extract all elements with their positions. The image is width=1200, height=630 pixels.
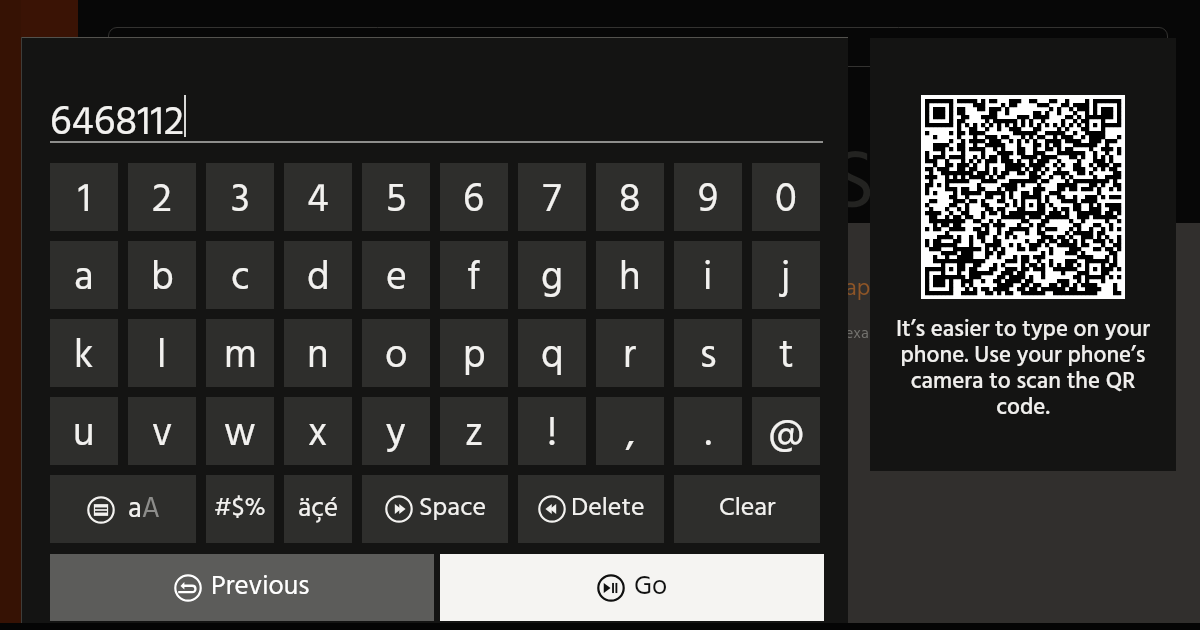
staticText: j [781,247,791,311]
staticText: y [386,403,406,467]
staticText: g [541,247,563,311]
button[interactable]: 8 [596,163,664,231]
staticText: h [619,247,641,311]
button[interactable]: w [206,397,274,465]
button[interactable]: l [128,319,196,387]
button[interactable]: e [362,241,430,309]
staticText: äçé [298,488,339,531]
button[interactable]: q [518,319,586,387]
button[interactable]: y [362,397,430,465]
staticText: It’s easier to type on your phone. Use y… [878,312,1168,427]
staticText: d [307,247,330,311]
staticText: m [224,325,257,389]
button[interactable]: n [284,319,352,387]
button[interactable]: Clear [674,475,820,543]
button[interactable]: Previous [50,554,434,621]
staticText: f [467,247,481,311]
staticText: 8 [619,169,641,233]
staticText: s [700,325,717,389]
button[interactable]: 7 [518,163,586,231]
button[interactable]: 0 [752,163,820,231]
staticText: u [73,403,95,467]
button[interactable]: t [752,319,820,387]
button[interactable]: x [284,397,352,465]
staticText: 6 [463,169,485,233]
button[interactable]: Switch keyboard layout [50,475,196,543]
staticText: . [705,403,712,467]
button[interactable]: b [128,241,196,309]
staticText: @ [768,403,805,467]
staticText: c [231,247,250,311]
button[interactable]: Delete [518,475,664,543]
staticText: 2 [152,169,172,233]
staticText: e [386,247,407,311]
staticText: a [74,247,94,311]
button[interactable]: , [596,397,664,465]
staticText: 6468112 [50,91,184,139]
staticText: i [703,247,713,311]
button[interactable]: h [596,241,664,309]
button[interactable]: Space [362,475,508,543]
staticText: Previous [211,566,310,609]
staticText: Space [419,488,486,530]
staticText: w [224,403,256,467]
button[interactable]: m [206,319,274,387]
button[interactable]: v [128,397,196,465]
staticText: z [465,403,484,467]
staticText: #$% [214,489,266,529]
button[interactable]: j [752,241,820,309]
button[interactable]: 9 [674,163,742,231]
button[interactable]: a [50,241,118,309]
button[interactable]: 1 [50,163,118,231]
staticText: 1 [78,169,91,233]
button[interactable]: o [362,319,430,387]
button[interactable]: äçé [284,475,352,543]
button[interactable]: i [674,241,742,309]
button[interactable]: z [440,397,508,465]
staticText: , [626,403,635,467]
button[interactable]: ! [518,397,586,465]
button[interactable]: r [596,319,664,387]
button[interactable]: s [674,319,742,387]
button[interactable]: 3 [206,163,274,231]
button[interactable]: 2 [128,163,196,231]
button[interactable]: u [50,397,118,465]
button[interactable]: @ [752,397,820,465]
staticText: aA [128,487,160,532]
button[interactable]: p [440,319,508,387]
staticText: o [385,325,408,389]
staticText: b [151,247,174,311]
staticText: k [74,325,94,389]
button[interactable]: 4 [284,163,352,231]
staticText: ! [547,403,558,467]
staticText: Delete [571,488,645,530]
button[interactable]: d [284,241,352,309]
staticText: x [308,403,328,467]
staticText: n [307,325,329,389]
staticText: l [157,325,167,389]
button[interactable]: k [50,319,118,387]
button[interactable]: Go [440,554,824,621]
staticText: 4 [307,169,329,233]
button[interactable]: . [674,397,742,465]
button[interactable]: c [206,241,274,309]
staticText: exa [845,321,869,347]
staticText: ap [845,270,871,308]
staticText: v [152,403,173,467]
staticText: 0 [775,169,797,233]
button[interactable]: 6 [440,163,508,231]
staticText: 3 [231,169,250,233]
staticText: r [623,325,637,389]
staticText: Go [634,566,668,609]
staticText: 7 [543,169,562,233]
button[interactable]: 5 [362,163,430,231]
button[interactable]: #$% [206,475,274,543]
staticText: 9 [698,169,719,233]
staticText: q [541,325,564,389]
button[interactable]: f [440,241,508,309]
staticText: t [779,325,794,389]
staticText: p [463,325,486,389]
staticText: 5 [386,169,407,233]
button[interactable]: g [518,241,586,309]
staticText: Clear [719,488,776,530]
